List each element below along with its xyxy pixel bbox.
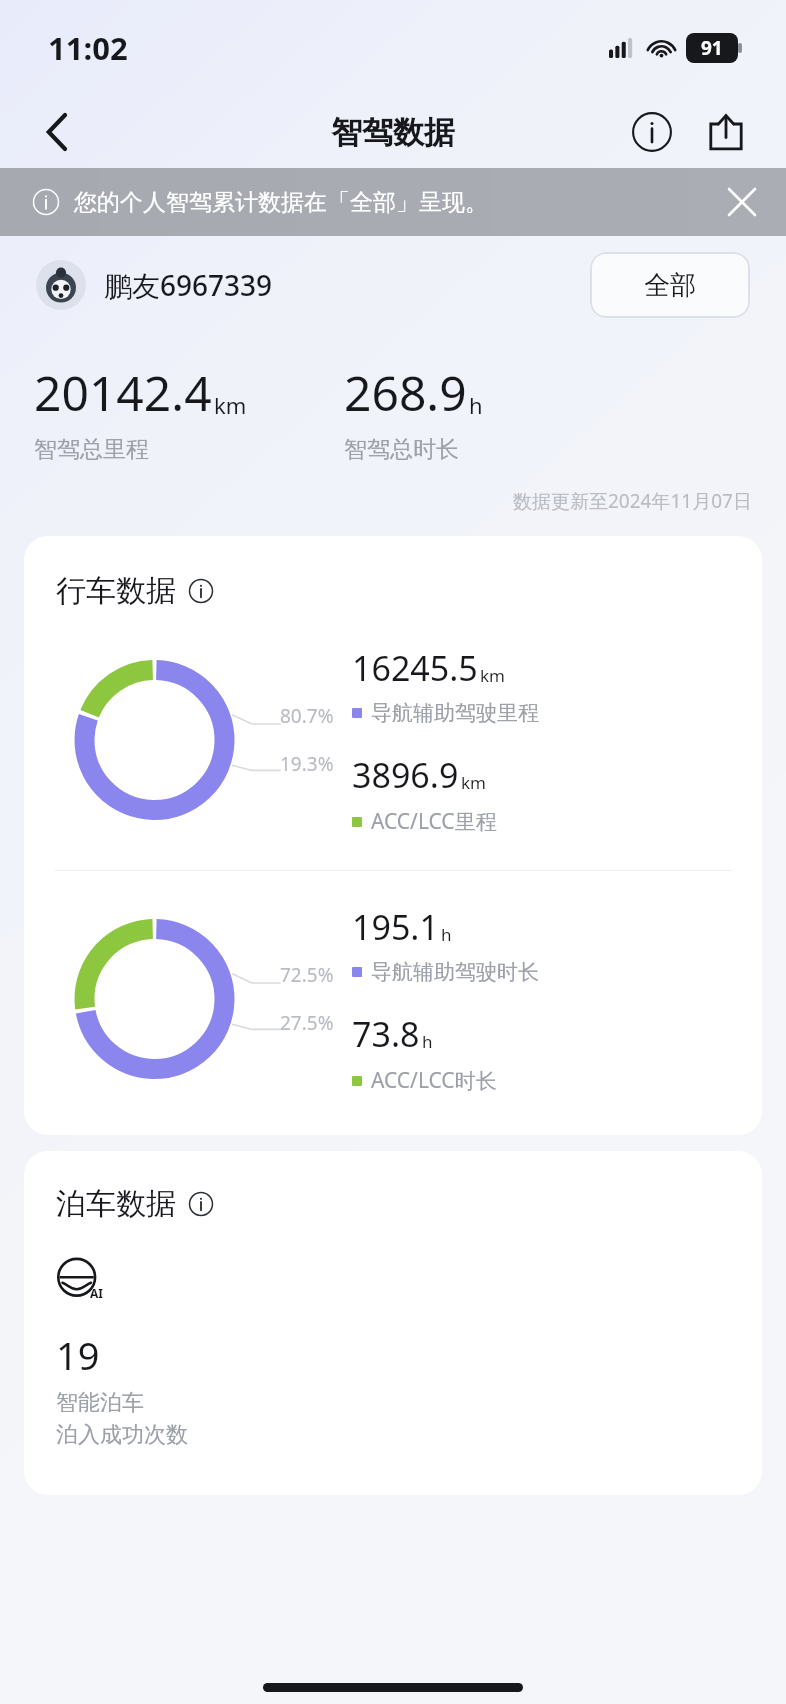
button[interactable]: Share [698,104,754,160]
button[interactable]: Info [624,104,680,160]
staticText: 行车数据 [56,572,176,610]
staticText: 72.5% [280,962,334,988]
staticText: 73.8 [352,1011,420,1057]
staticText: 195.1 [352,904,439,950]
staticText: 鹏友6967339 [104,266,273,304]
staticText: km [480,664,505,687]
staticText: 智驾数据 [331,113,455,152]
staticText: 80.7% [280,703,334,729]
staticText: km [214,390,247,420]
staticText: 泊车数据 [56,1185,176,1223]
button[interactable]: Back [30,104,86,160]
staticText: 泊入成功次数 [56,1421,188,1449]
staticText: km [461,771,486,794]
staticText: h [422,1030,433,1053]
staticText: 您的个人智驾累计数据在「全部」呈现。 [74,188,488,217]
staticText: 16245.5 [352,645,478,691]
staticText: 11:02 [48,27,128,69]
staticText: 导航辅助驾驶里程 [371,700,539,726]
button[interactable]: 行车数据 [56,572,214,610]
staticText: 智驾总时长 [344,435,459,464]
staticText: h [441,923,452,946]
staticText: 导航辅助驾驶时长 [371,959,539,985]
staticText: 268.9 [344,360,467,425]
button[interactable] [36,260,86,310]
staticText: 19.3% [280,751,334,777]
button[interactable]: 您的个人智驾累计数据在「全部」呈现。 [0,168,786,236]
button[interactable]: 全部 [590,252,750,318]
staticText: ACC/LCC里程 [371,807,497,836]
button[interactable]: Close [714,174,770,230]
staticText: 27.5% [280,1010,334,1036]
staticText: 3896.9 [352,752,459,798]
staticText: ACC/LCC时长 [371,1066,497,1095]
staticText: h [469,390,483,420]
staticText: 智能泊车 [56,1389,144,1417]
staticText: 19 [56,1329,100,1381]
button[interactable]: 泊车数据 [56,1185,214,1223]
staticText: 91 [701,35,723,61]
staticText: 数据更新至2024年11月07日 [513,488,752,514]
staticText: 智驾总里程 [34,435,149,464]
staticText: 20142.4 [34,360,212,425]
staticText: 全部 [644,269,696,302]
staticText: AI [90,1285,103,1301]
